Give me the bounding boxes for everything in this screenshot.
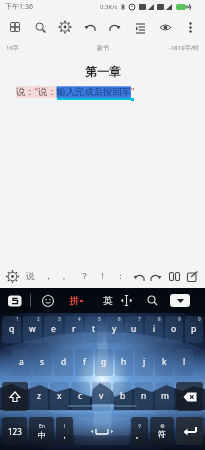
staticText: z bbox=[37, 390, 41, 402]
staticText: h bbox=[121, 356, 127, 368]
staticText: 符 bbox=[158, 429, 166, 439]
button[interactable]: j bbox=[135, 349, 153, 376]
button[interactable]: h bbox=[115, 349, 133, 376]
staticText: 5 bbox=[98, 316, 101, 322]
button[interactable] bbox=[102, 14, 127, 40]
button[interactable] bbox=[2, 382, 28, 411]
staticText: l bbox=[183, 356, 186, 368]
button[interactable]: s bbox=[33, 349, 52, 376]
staticText: 123 bbox=[8, 426, 22, 437]
staticText: 新书 bbox=[97, 44, 109, 52]
button[interactable] bbox=[3, 14, 27, 40]
staticText: ？ bbox=[80, 271, 89, 282]
button[interactable]: ！ bbox=[93, 264, 111, 288]
button[interactable] bbox=[52, 14, 77, 40]
button[interactable]: a bbox=[12, 349, 31, 376]
button[interactable]: y bbox=[105, 316, 123, 343]
staticText: i bbox=[153, 323, 156, 335]
button[interactable]: p bbox=[185, 316, 203, 343]
staticText: j bbox=[143, 356, 146, 368]
button[interactable]: b bbox=[113, 382, 132, 411]
button[interactable] bbox=[165, 264, 183, 288]
staticText: ？ bbox=[137, 423, 142, 429]
staticText: 2 bbox=[37, 316, 40, 322]
button[interactable]: ？ bbox=[75, 264, 93, 288]
button[interactable]: ， bbox=[39, 264, 57, 288]
button[interactable]: d bbox=[54, 349, 73, 376]
staticText: 下午1:36 bbox=[5, 2, 33, 12]
button[interactable]: o bbox=[165, 316, 183, 343]
button[interactable]: ： bbox=[111, 264, 129, 288]
button[interactable] bbox=[183, 264, 201, 288]
staticText: y bbox=[112, 323, 117, 335]
button[interactable]: l bbox=[175, 349, 193, 376]
button[interactable] bbox=[144, 292, 161, 309]
staticText: ： bbox=[116, 271, 125, 282]
button[interactable]: m bbox=[155, 382, 174, 411]
staticText: 8 bbox=[158, 316, 161, 322]
button[interactable] bbox=[177, 14, 202, 40]
button[interactable]: 拼 bbox=[69, 295, 83, 307]
button[interactable]: z bbox=[30, 382, 48, 411]
button[interactable]: w bbox=[23, 316, 42, 343]
staticText: 。 bbox=[135, 429, 144, 440]
staticText: o bbox=[171, 323, 177, 335]
button[interactable]: n bbox=[134, 382, 153, 411]
staticText: c bbox=[78, 390, 83, 402]
staticText: En bbox=[39, 423, 45, 430]
button[interactable] bbox=[176, 382, 203, 411]
staticText: 说：“说：输入完成后按回车” bbox=[16, 85, 135, 98]
button[interactable]: u bbox=[125, 316, 143, 343]
button[interactable]: v bbox=[92, 382, 111, 411]
button[interactable]: r bbox=[65, 316, 83, 343]
button[interactable]: ⚙ bbox=[150, 417, 174, 445]
staticText: k bbox=[162, 356, 167, 368]
button[interactable] bbox=[5, 292, 25, 310]
button[interactable]: i bbox=[145, 316, 163, 343]
button[interactable]: e bbox=[44, 316, 63, 343]
staticText: e bbox=[51, 323, 56, 335]
staticText: 中 bbox=[38, 430, 46, 440]
button[interactable]: ？ bbox=[131, 417, 148, 445]
button[interactable] bbox=[4, 264, 21, 288]
button[interactable] bbox=[152, 14, 177, 40]
staticText: 4 bbox=[78, 316, 81, 322]
button[interactable]: 。 bbox=[57, 264, 75, 288]
staticText: 1 bbox=[16, 316, 19, 322]
staticText: ！ bbox=[62, 423, 67, 429]
button[interactable]: ！ bbox=[56, 417, 73, 445]
staticText: g bbox=[101, 356, 107, 368]
button[interactable]: En bbox=[29, 417, 54, 445]
button[interactable]: 说 bbox=[21, 264, 39, 288]
staticText: ， bbox=[44, 271, 53, 282]
staticText: 6 bbox=[118, 316, 121, 322]
button[interactable] bbox=[127, 14, 152, 40]
button[interactable] bbox=[147, 264, 165, 288]
button[interactable]: c bbox=[71, 382, 90, 411]
staticText: x bbox=[57, 390, 62, 402]
button[interactable]: g bbox=[95, 349, 113, 376]
button[interactable]: x bbox=[50, 382, 69, 411]
button[interactable]: t bbox=[85, 316, 103, 343]
button[interactable] bbox=[40, 293, 56, 309]
staticText: 说 bbox=[26, 271, 35, 282]
button[interactable] bbox=[27, 14, 52, 40]
staticText: w bbox=[29, 323, 36, 335]
button[interactable]: 英 bbox=[103, 295, 113, 307]
staticText: 16字 bbox=[6, 44, 19, 52]
staticText: f bbox=[83, 356, 86, 368]
staticText: d bbox=[61, 356, 67, 368]
button[interactable] bbox=[176, 417, 203, 445]
button[interactable] bbox=[75, 417, 129, 445]
button[interactable] bbox=[129, 264, 147, 288]
staticText: b bbox=[120, 390, 126, 402]
button[interactable] bbox=[77, 14, 102, 40]
button[interactable]: k bbox=[155, 349, 173, 376]
button[interactable]: f bbox=[75, 349, 93, 376]
button[interactable] bbox=[118, 292, 135, 309]
button[interactable]: q bbox=[2, 316, 21, 343]
staticText: 3 bbox=[58, 316, 61, 322]
button[interactable]: 123 bbox=[2, 417, 27, 445]
button[interactable] bbox=[170, 294, 190, 307]
staticText: r bbox=[72, 323, 76, 335]
